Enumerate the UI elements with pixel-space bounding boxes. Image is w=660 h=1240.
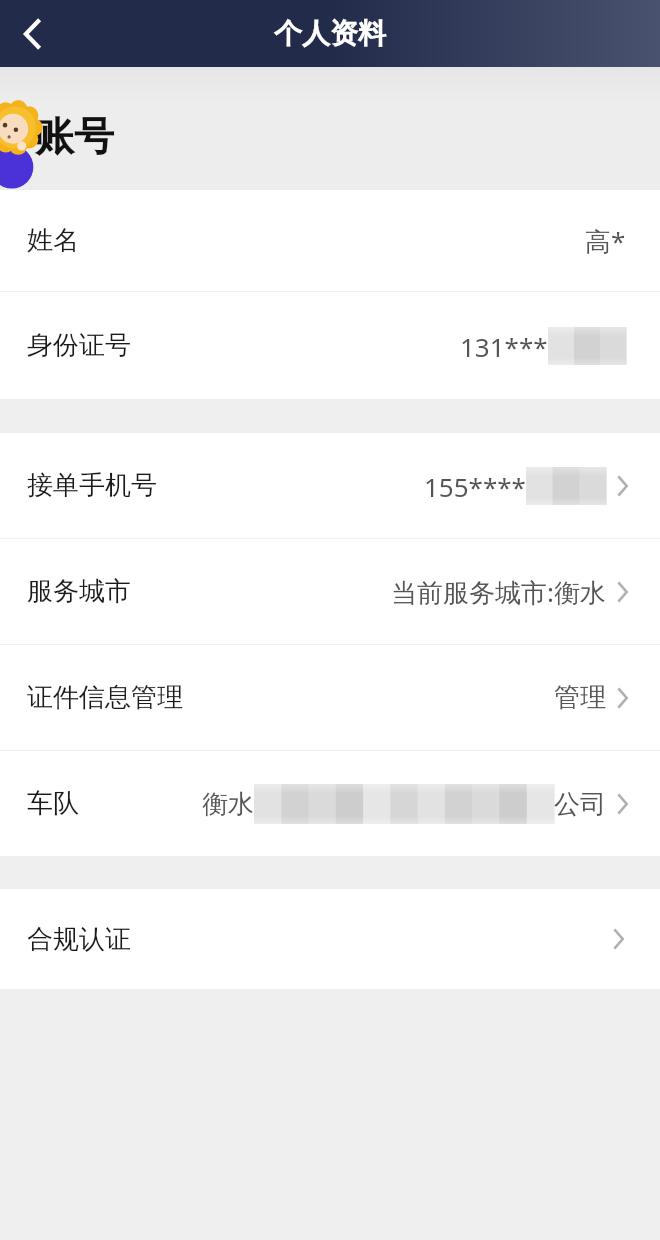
staticText: 当前服务城市:衡水 bbox=[391, 574, 606, 610]
button[interactable]: 身份证号 bbox=[0, 292, 660, 399]
staticText: 服务城市 bbox=[27, 575, 131, 608]
button[interactable]: 姓名 bbox=[0, 190, 660, 291]
button[interactable]: 合规认证 bbox=[0, 889, 660, 989]
staticText: 账号 bbox=[34, 111, 114, 161]
button[interactable]: 服务城市 bbox=[0, 539, 660, 644]
staticText: 身份证号 bbox=[27, 329, 131, 362]
staticText: 姓名 bbox=[27, 224, 79, 257]
staticText: 接单手机号 bbox=[27, 469, 157, 502]
staticText: 155**** bbox=[424, 469, 526, 504]
button[interactable]: 证件信息管理 bbox=[0, 645, 660, 750]
button[interactable]: 接单手机号 bbox=[0, 433, 660, 538]
staticText: 车队 bbox=[27, 787, 79, 820]
button[interactable]: 车队 bbox=[0, 751, 660, 856]
staticText: 衡水 bbox=[202, 788, 254, 821]
staticText: 公司 bbox=[554, 788, 606, 821]
staticText: 合规认证 bbox=[27, 923, 131, 956]
staticText: 证件信息管理 bbox=[27, 681, 183, 714]
staticText: 个人资料 bbox=[274, 16, 386, 51]
button[interactable]: 返回 bbox=[0, 2, 64, 66]
staticText: 高* bbox=[585, 223, 626, 259]
staticText: 131*** bbox=[460, 329, 548, 364]
staticText: 管理 bbox=[554, 681, 606, 714]
